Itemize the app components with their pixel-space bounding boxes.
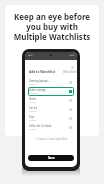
staticText: 3 items	[29, 119, 37, 122]
staticText: 6 items	[29, 110, 37, 113]
button[interactable]: + Create a new watchlist	[25, 137, 77, 141]
button[interactable]: Shoes	[28, 96, 74, 105]
button[interactable]: Gaming laptops	[28, 78, 74, 87]
staticText: Keep an eye before you buy with Multiple…	[5, 11, 99, 42]
button[interactable]: Video storage	[28, 87, 74, 96]
staticText: Save	[48, 156, 55, 160]
staticText: Watchlists	[63, 70, 77, 74]
staticText: Video storage	[29, 88, 46, 92]
staticText: Gaming laptops	[29, 79, 49, 83]
button[interactable]: Other list I include	[28, 123, 74, 132]
staticText: Other list I include	[29, 124, 52, 128]
staticText: 2 items	[29, 92, 37, 95]
staticText: 1 item	[29, 101, 36, 104]
staticText: Add to Watchlist	[29, 70, 56, 74]
button[interactable]: Save	[28, 155, 74, 161]
staticText: 8 items	[29, 128, 37, 131]
button[interactable]: Close	[70, 65, 75, 70]
staticText: 4 items	[29, 83, 37, 86]
staticText: Shoes	[29, 97, 37, 101]
button[interactable]: Car kit	[28, 105, 74, 114]
staticText: Toys	[29, 115, 35, 119]
button[interactable]: Toys	[28, 114, 74, 123]
staticText: Car kit	[29, 106, 37, 110]
